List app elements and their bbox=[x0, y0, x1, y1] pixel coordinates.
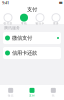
staticText: 9:41 bbox=[2, 0, 9, 5]
staticText: 银行卡 bbox=[35, 22, 44, 25]
button[interactable]: 零钱 bbox=[16, 14, 32, 25]
button[interactable]: 信用卡还款 bbox=[0, 47, 64, 59]
button[interactable]: 支付 bbox=[21, 85, 43, 100]
staticText: 微信支付 bbox=[12, 35, 32, 41]
staticText: 支付 bbox=[29, 94, 35, 97]
staticText: 更多 bbox=[53, 22, 59, 25]
staticText: 信用卡还款 bbox=[12, 50, 37, 56]
button[interactable]: 更多 bbox=[48, 14, 64, 25]
staticText: 腾讯服务 bbox=[4, 25, 20, 30]
button[interactable]: 我 bbox=[43, 85, 64, 100]
staticText: 零钱 bbox=[21, 22, 27, 25]
button[interactable]: 银行卡 bbox=[32, 14, 48, 25]
staticText: ▮▮▮ bbox=[59, 1, 62, 4]
button[interactable]: 微信 bbox=[0, 85, 21, 100]
button[interactable]: 收付款 bbox=[0, 14, 16, 25]
staticText: 我 bbox=[52, 94, 55, 97]
button[interactable]: 微信支付 bbox=[0, 32, 64, 44]
staticText: 微信 bbox=[8, 94, 14, 97]
staticText: 支付 bbox=[27, 6, 37, 13]
staticText: 收付款 bbox=[3, 22, 12, 25]
